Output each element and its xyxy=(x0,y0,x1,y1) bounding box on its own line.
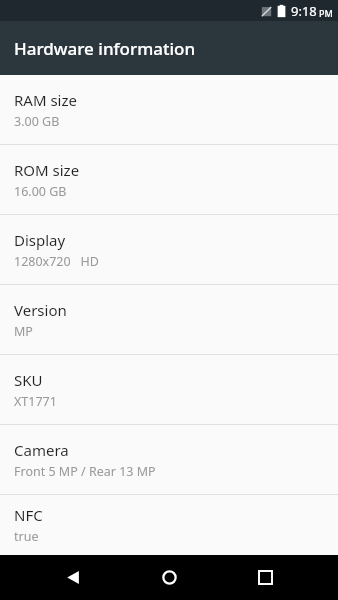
button[interactable]: ROM size xyxy=(0,145,338,214)
button[interactable]: Version xyxy=(0,285,338,354)
staticText: PM xyxy=(319,7,333,19)
button[interactable]: Display xyxy=(0,215,338,284)
staticText: Hardware information xyxy=(14,37,196,60)
staticText: NFC xyxy=(14,505,43,525)
staticText: Version xyxy=(14,300,67,320)
staticText: MP xyxy=(14,323,33,340)
button[interactable]: SKU xyxy=(0,355,338,424)
staticText: XT1771 xyxy=(14,393,57,410)
staticText: ROM size xyxy=(14,160,80,180)
staticText: true xyxy=(14,528,39,545)
staticText: 9:18 xyxy=(291,2,317,20)
staticText: Front 5 MP / Rear 13 MP xyxy=(14,463,156,480)
staticText: RAM size xyxy=(14,90,77,110)
button[interactable]: Home xyxy=(146,555,192,600)
button[interactable]: RAM size xyxy=(0,75,338,144)
staticText: 3.00 GB xyxy=(14,113,60,130)
button[interactable]: NFC xyxy=(0,495,338,555)
staticText: 16.00 GB xyxy=(14,183,67,200)
staticText: 1280x720 HD xyxy=(14,253,99,270)
button[interactable]: Camera xyxy=(0,425,338,494)
button[interactable]: Back xyxy=(50,555,96,600)
staticText: Display xyxy=(14,230,66,250)
staticText: Camera xyxy=(14,440,69,460)
staticText: SKU xyxy=(14,370,43,390)
button[interactable]: Recents xyxy=(242,555,288,600)
